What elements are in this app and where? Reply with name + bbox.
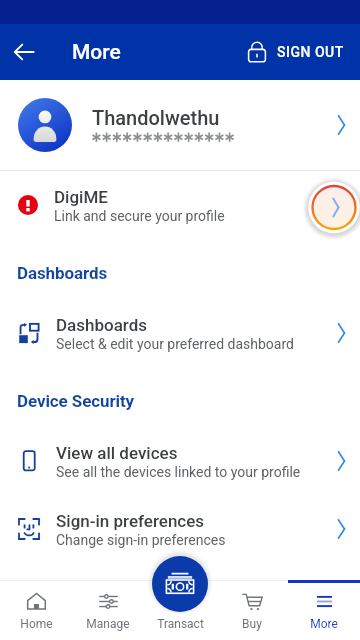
staticText: More bbox=[72, 40, 121, 65]
staticText: See all the devices linked to your profi… bbox=[56, 464, 301, 480]
button[interactable]: Dashboards bbox=[0, 299, 360, 367]
staticText: Home bbox=[20, 617, 53, 631]
button[interactable]: SIGN OUT bbox=[233, 40, 360, 64]
staticText: SIGN OUT bbox=[277, 44, 344, 60]
button[interactable]: More bbox=[288, 580, 360, 640]
button[interactable]: Back bbox=[0, 28, 48, 76]
button[interactable]: DigiME bbox=[0, 171, 360, 239]
staticText: Buy bbox=[242, 617, 262, 631]
staticText: Device Security bbox=[17, 391, 360, 411]
button[interactable]: View all devices bbox=[0, 427, 360, 495]
button[interactable]: Sign-in preferences bbox=[0, 495, 360, 563]
button[interactable]: Buy bbox=[216, 580, 288, 640]
staticText: Manage bbox=[86, 617, 130, 631]
button[interactable]: Transact bbox=[144, 580, 216, 640]
staticText: Dashboards bbox=[56, 315, 148, 335]
staticText: Link and secure your profile bbox=[54, 208, 225, 224]
button[interactable]: Transact bbox=[152, 556, 208, 612]
staticText: View all devices bbox=[56, 443, 178, 463]
staticText: Change sign-in preferences bbox=[56, 532, 226, 548]
staticText: Dashboards bbox=[17, 263, 360, 283]
staticText: More bbox=[310, 617, 338, 631]
button[interactable]: Thandolwethu bbox=[0, 80, 360, 170]
button[interactable]: Home bbox=[0, 580, 72, 640]
staticText: DigiME bbox=[54, 187, 108, 207]
button[interactable]: Manage bbox=[72, 580, 144, 640]
staticText: Transact bbox=[157, 617, 204, 631]
button[interactable]: Open DigiME bbox=[304, 180, 360, 236]
staticText: Thandolwethu bbox=[92, 106, 220, 129]
staticText: Sign-in preferences bbox=[56, 511, 205, 531]
staticText: Select & edit your preferred dashboard bbox=[56, 336, 294, 352]
